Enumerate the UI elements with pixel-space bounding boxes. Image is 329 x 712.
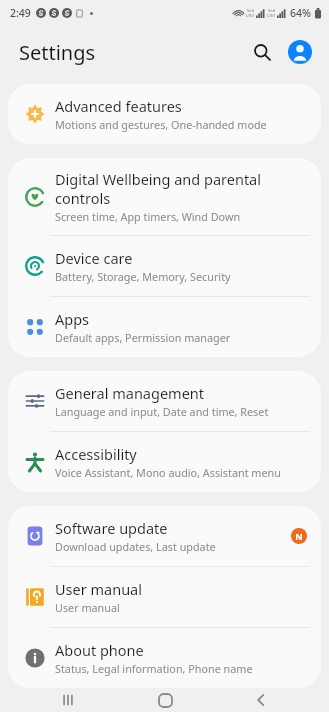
staticText: Status, Legal information, Phone name	[55, 661, 253, 676]
button[interactable]: About phone	[8, 628, 321, 688]
button[interactable]: Software update	[8, 506, 321, 566]
button[interactable]: Home	[137, 688, 193, 712]
staticText: Screen time, App timers, Wind Down	[55, 209, 241, 224]
button[interactable]: Advanced features	[8, 84, 321, 144]
staticText: Battery, Storage, Memory, Security	[55, 269, 231, 284]
staticText: Default apps, Permission manager	[55, 330, 231, 345]
button[interactable]: Accessibility	[8, 432, 321, 492]
staticText: Language and input, Date and time, Reset	[55, 404, 269, 419]
staticText: Device care	[55, 248, 133, 268]
button[interactable]: User manual	[8, 567, 321, 627]
staticText: 2:49	[10, 6, 31, 20]
staticText: Software update	[55, 518, 168, 538]
button[interactable]: Apps	[8, 297, 321, 357]
staticText: LTE1	[246, 13, 255, 18]
button[interactable]: Search	[245, 35, 279, 69]
button[interactable]: Back	[233, 688, 289, 712]
staticText: Settings	[19, 39, 96, 66]
staticText: Apps	[55, 309, 90, 329]
staticText: User manual	[55, 579, 142, 599]
staticText: N	[295, 530, 303, 542]
staticText: 64%	[290, 6, 311, 20]
button[interactable]: Device care	[8, 236, 321, 296]
button[interactable]: General management	[8, 371, 321, 431]
button[interactable]: Account	[283, 35, 317, 69]
button[interactable]: Digital Wellbeing and parental controls	[8, 158, 321, 235]
staticText: Voice Assistant, Mono audio, Assistant m…	[55, 465, 281, 480]
staticText: Motions and gestures, One-handed mode	[55, 117, 267, 132]
staticText: Volt	[247, 8, 255, 13]
staticText: Advanced features	[55, 96, 182, 116]
staticText: About phone	[55, 640, 144, 660]
staticText: User manual	[55, 600, 120, 615]
staticText: Volt	[268, 8, 276, 13]
staticText: Accessibility	[55, 444, 137, 464]
staticText: General management	[55, 383, 205, 403]
staticText: Download updates, Last update	[55, 539, 216, 554]
button[interactable]: Recents	[40, 688, 96, 712]
staticText: Digital Wellbeing and parental controls	[55, 169, 311, 208]
staticText: LTE1	[267, 13, 276, 18]
